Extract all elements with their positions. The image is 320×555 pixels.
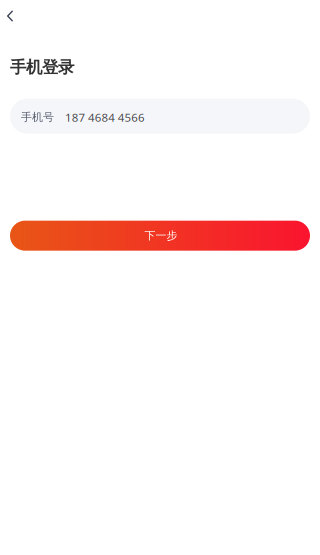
staticText: 手机登录 (10, 57, 74, 78)
staticText: 下一步 (144, 229, 177, 243)
button[interactable]: 手机号 (10, 99, 310, 134)
button[interactable]: Back (0, 2, 30, 30)
staticText: 手机号 (21, 110, 54, 124)
button[interactable]: 下一步 (10, 221, 310, 251)
staticText: 187 4684 4566 (65, 109, 145, 125)
